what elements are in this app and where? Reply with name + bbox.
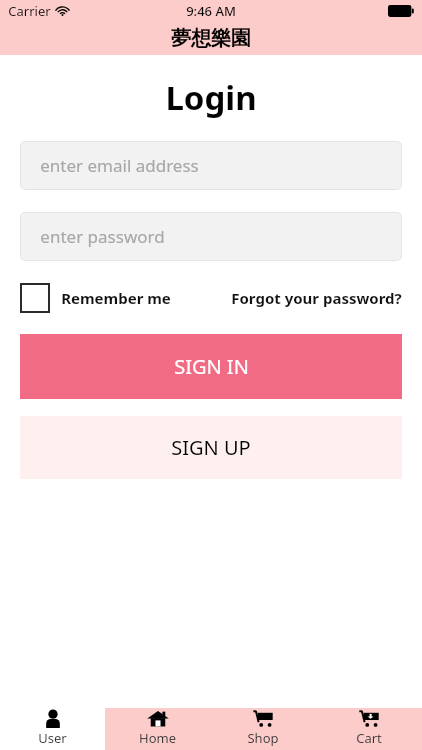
staticText: Forgot your password? <box>231 288 402 308</box>
button[interactable]: Forgot your password? <box>231 288 402 308</box>
staticText: Carrier <box>8 2 51 20</box>
staticText: 夢想樂園 <box>171 26 251 51</box>
button[interactable]: enter email address <box>20 141 402 190</box>
button[interactable]: Remember me <box>20 283 177 313</box>
button[interactable]: Home <box>105 708 210 750</box>
staticText: Login <box>165 75 257 120</box>
button[interactable]: Shop <box>210 708 316 750</box>
staticText: Home <box>139 729 176 747</box>
staticText: Cart <box>356 729 382 747</box>
staticText: enter password <box>40 225 165 248</box>
button[interactable]: SIGN IN <box>20 334 402 399</box>
staticText: User <box>38 729 67 747</box>
button[interactable]: Cart <box>316 708 422 750</box>
staticText: enter email address <box>40 154 199 177</box>
staticText: SIGN UP <box>171 434 251 461</box>
button[interactable]: enter password <box>20 212 402 261</box>
staticText: SIGN IN <box>174 353 249 380</box>
button[interactable]: User <box>0 708 105 750</box>
staticText: 9:46 AM <box>186 2 236 20</box>
button[interactable]: SIGN UP <box>20 416 402 479</box>
staticText: Shop <box>247 729 279 747</box>
staticText: Remember me <box>61 288 171 308</box>
